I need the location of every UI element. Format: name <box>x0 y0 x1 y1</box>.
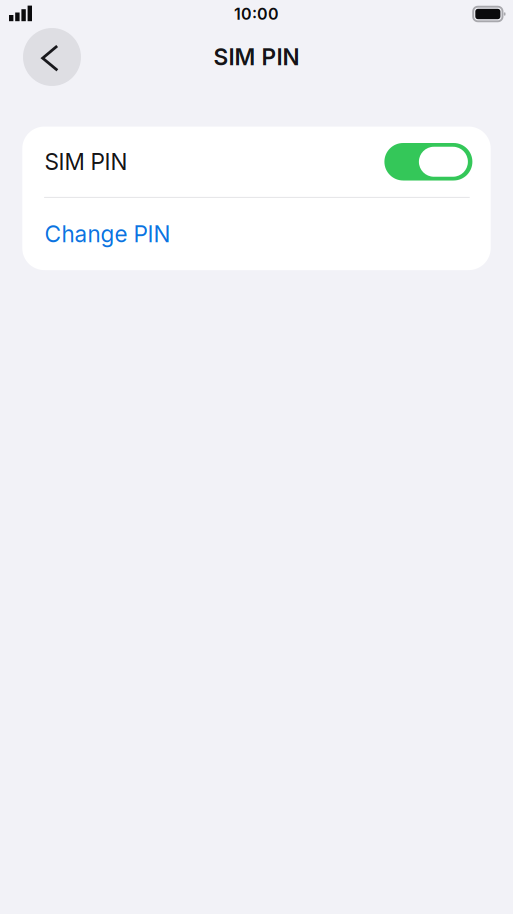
staticText: 10:00 <box>234 4 279 24</box>
staticText: SIM PIN <box>45 148 128 175</box>
staticText: Change PIN <box>45 220 171 248</box>
button[interactable]: Change PIN <box>22 198 491 270</box>
button[interactable]: Back <box>23 28 81 86</box>
button[interactable]: SIM PIN <box>22 127 491 197</box>
staticText: SIM PIN <box>213 43 299 71</box>
